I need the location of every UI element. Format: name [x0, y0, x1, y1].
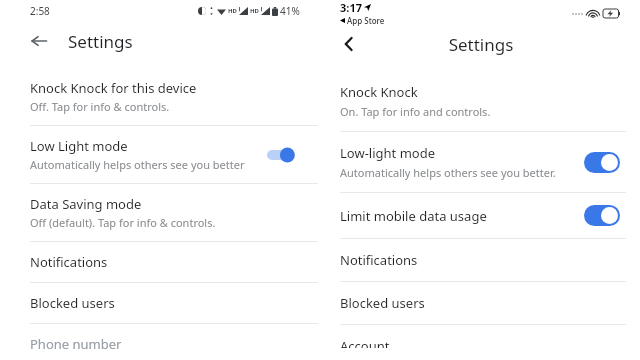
staticText: Blocked users: [30, 294, 115, 312]
button[interactable]: Notifications: [322, 239, 640, 281]
staticText: Low-light mode: [340, 144, 435, 162]
button[interactable]: Blocked users: [0, 283, 318, 323]
button[interactable]: Toggle: [584, 152, 620, 173]
staticText: Automatically helps others see you bette…: [340, 165, 556, 180]
staticText: Blocked users: [340, 294, 425, 312]
button[interactable]: Back: [22, 24, 56, 58]
staticText: App Store: [347, 15, 385, 26]
button[interactable]: Notifications: [0, 242, 318, 282]
staticText: Off (default). Tap for info & controls.: [30, 215, 216, 230]
button[interactable]: Toggle: [258, 142, 302, 168]
staticText: 2:58: [30, 4, 50, 18]
staticText: Knock Knock: [340, 83, 418, 101]
button[interactable]: Knock Knock for this device: [0, 68, 318, 125]
staticText: On. Tap for info and controls.: [340, 104, 491, 119]
staticText: 3:17: [340, 0, 362, 15]
button[interactable]: Back: [332, 27, 366, 61]
staticText: Settings: [68, 30, 133, 53]
staticText: 41%: [280, 4, 300, 18]
button[interactable]: Account: [322, 325, 640, 360]
staticText: Phone number: [30, 335, 122, 349]
button[interactable]: Limit mobile data usage: [322, 193, 640, 238]
button[interactable]: Phone number: [0, 324, 318, 360]
button[interactable]: Low Light mode: [0, 126, 318, 183]
staticText: Off. Tap for info & controls.: [30, 99, 170, 114]
staticText: Account: [340, 337, 390, 348]
staticText: HD: [250, 7, 259, 15]
staticText: Knock Knock for this device: [30, 79, 197, 97]
staticText: Notifications: [30, 253, 108, 271]
button[interactable]: Blocked users: [322, 282, 640, 324]
staticText: Low Light mode: [30, 137, 128, 155]
staticText: Data Saving mode: [30, 195, 142, 213]
button[interactable]: Data Saving mode: [0, 184, 318, 241]
button[interactable]: Low-light mode: [322, 132, 640, 192]
button[interactable]: Knock Knock: [322, 71, 640, 131]
staticText: HD: [228, 7, 237, 15]
staticText: Automatically helps others see you bette…: [30, 157, 245, 172]
button[interactable]: Toggle: [584, 205, 620, 226]
staticText: Limit mobile data usage: [340, 207, 487, 225]
staticText: Settings: [322, 33, 640, 56]
staticText: Notifications: [340, 251, 418, 269]
